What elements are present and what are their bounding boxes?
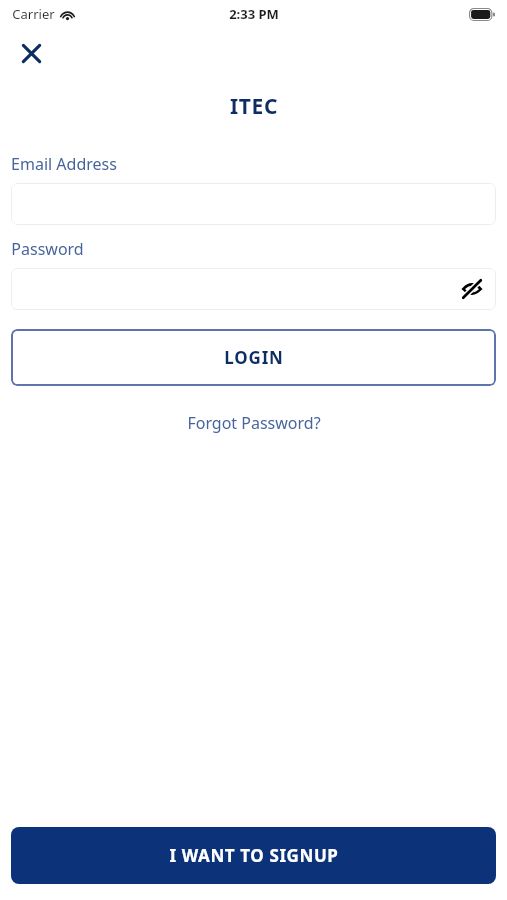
staticText: Password: [11, 238, 84, 260]
button[interactable]: Toggle password visibility: [11, 268, 496, 310]
button[interactable]: Close: [14, 36, 48, 70]
staticText: LOGIN: [224, 346, 284, 369]
button[interactable]: Forgot Password?: [177, 408, 331, 438]
staticText: 2:33 PM: [229, 5, 279, 23]
staticText: Email Address: [11, 153, 117, 175]
button[interactable]: I WANT TO SIGNUP: [11, 827, 496, 884]
button[interactable]: LOGIN: [11, 329, 496, 386]
staticText: Forgot Password?: [187, 412, 321, 434]
staticText: Carrier: [12, 5, 55, 23]
button[interactable]: Toggle password visibility: [456, 273, 488, 305]
staticText: I WANT TO SIGNUP: [169, 844, 339, 867]
staticText: ITEC: [230, 92, 278, 121]
button[interactable]: [11, 183, 496, 225]
